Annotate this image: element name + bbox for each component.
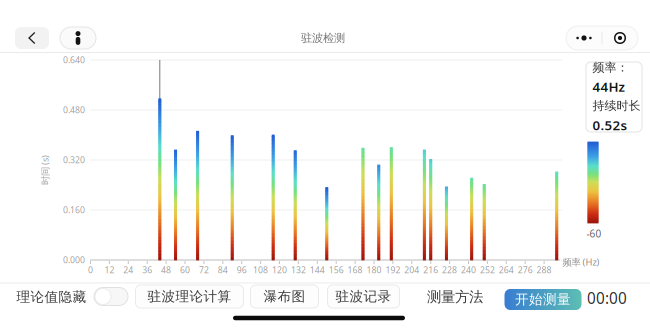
staticText: 168 xyxy=(348,264,363,276)
staticText: 测量方法 xyxy=(427,288,483,306)
staticText: 0.640 xyxy=(63,54,85,66)
staticText: 0.320 xyxy=(63,154,85,166)
staticText: 204 xyxy=(404,264,419,276)
staticText: 理论值隐藏 xyxy=(16,288,86,305)
button[interactable]: Hide theoretical values xyxy=(94,287,128,305)
staticText: 0.000 xyxy=(63,254,85,266)
button[interactable]: More options xyxy=(566,26,602,50)
staticText: 0.52s xyxy=(592,116,627,134)
staticText: 120 xyxy=(272,264,287,276)
staticText: 00:00 xyxy=(587,288,627,308)
staticText: 时间 (s) xyxy=(30,164,60,176)
staticText: 驻波检测 xyxy=(301,31,345,45)
staticText: 144 xyxy=(310,264,325,276)
staticText: 驻波记录 xyxy=(335,288,391,305)
staticText: 24 xyxy=(123,264,133,276)
staticText: 216 xyxy=(423,264,438,276)
staticText: 0 xyxy=(88,264,93,276)
staticText: 72 xyxy=(199,264,209,276)
button[interactable]: 瀑布图 xyxy=(250,285,318,308)
button[interactable]: 驻波记录 xyxy=(327,285,399,308)
staticText: 276 xyxy=(518,264,533,276)
staticText: 瀑布图 xyxy=(263,288,305,305)
staticText: 192 xyxy=(385,264,400,276)
button[interactable]: Back xyxy=(15,27,49,49)
staticText: 48 xyxy=(161,264,171,276)
staticText: 12 xyxy=(104,264,114,276)
staticText: 开始测量 xyxy=(515,291,571,308)
staticText: 180 xyxy=(366,264,381,276)
staticText: 0.160 xyxy=(63,204,85,216)
staticText: 84 xyxy=(218,264,228,276)
staticText: 频率： xyxy=(592,60,628,75)
staticText: 240 xyxy=(461,264,476,276)
staticText: 44Hz xyxy=(592,78,624,95)
staticText: 288 xyxy=(537,264,552,276)
staticText: 96 xyxy=(237,264,247,276)
staticText: 频率 (Hz) xyxy=(562,256,599,268)
staticText: 132 xyxy=(291,264,306,276)
staticText: 264 xyxy=(499,264,514,276)
button[interactable]: Close mini program xyxy=(602,26,638,50)
button[interactable]: 开始测量 xyxy=(504,289,581,310)
button[interactable]: 驻波理论计算 xyxy=(135,285,243,308)
staticText: 108 xyxy=(253,264,268,276)
staticText: -60 xyxy=(586,227,601,240)
staticText: 60 xyxy=(180,264,190,276)
staticText: 156 xyxy=(329,264,344,276)
button[interactable]: 测量方法 xyxy=(423,285,487,309)
staticText: 228 xyxy=(442,264,457,276)
staticText: 0.480 xyxy=(63,104,85,116)
staticText: 驻波理论计算 xyxy=(147,288,231,305)
staticText: 36 xyxy=(142,264,152,276)
button[interactable]: Voice input xyxy=(60,27,96,49)
staticText: 持续时长 xyxy=(592,98,640,113)
staticText: 252 xyxy=(480,264,495,276)
